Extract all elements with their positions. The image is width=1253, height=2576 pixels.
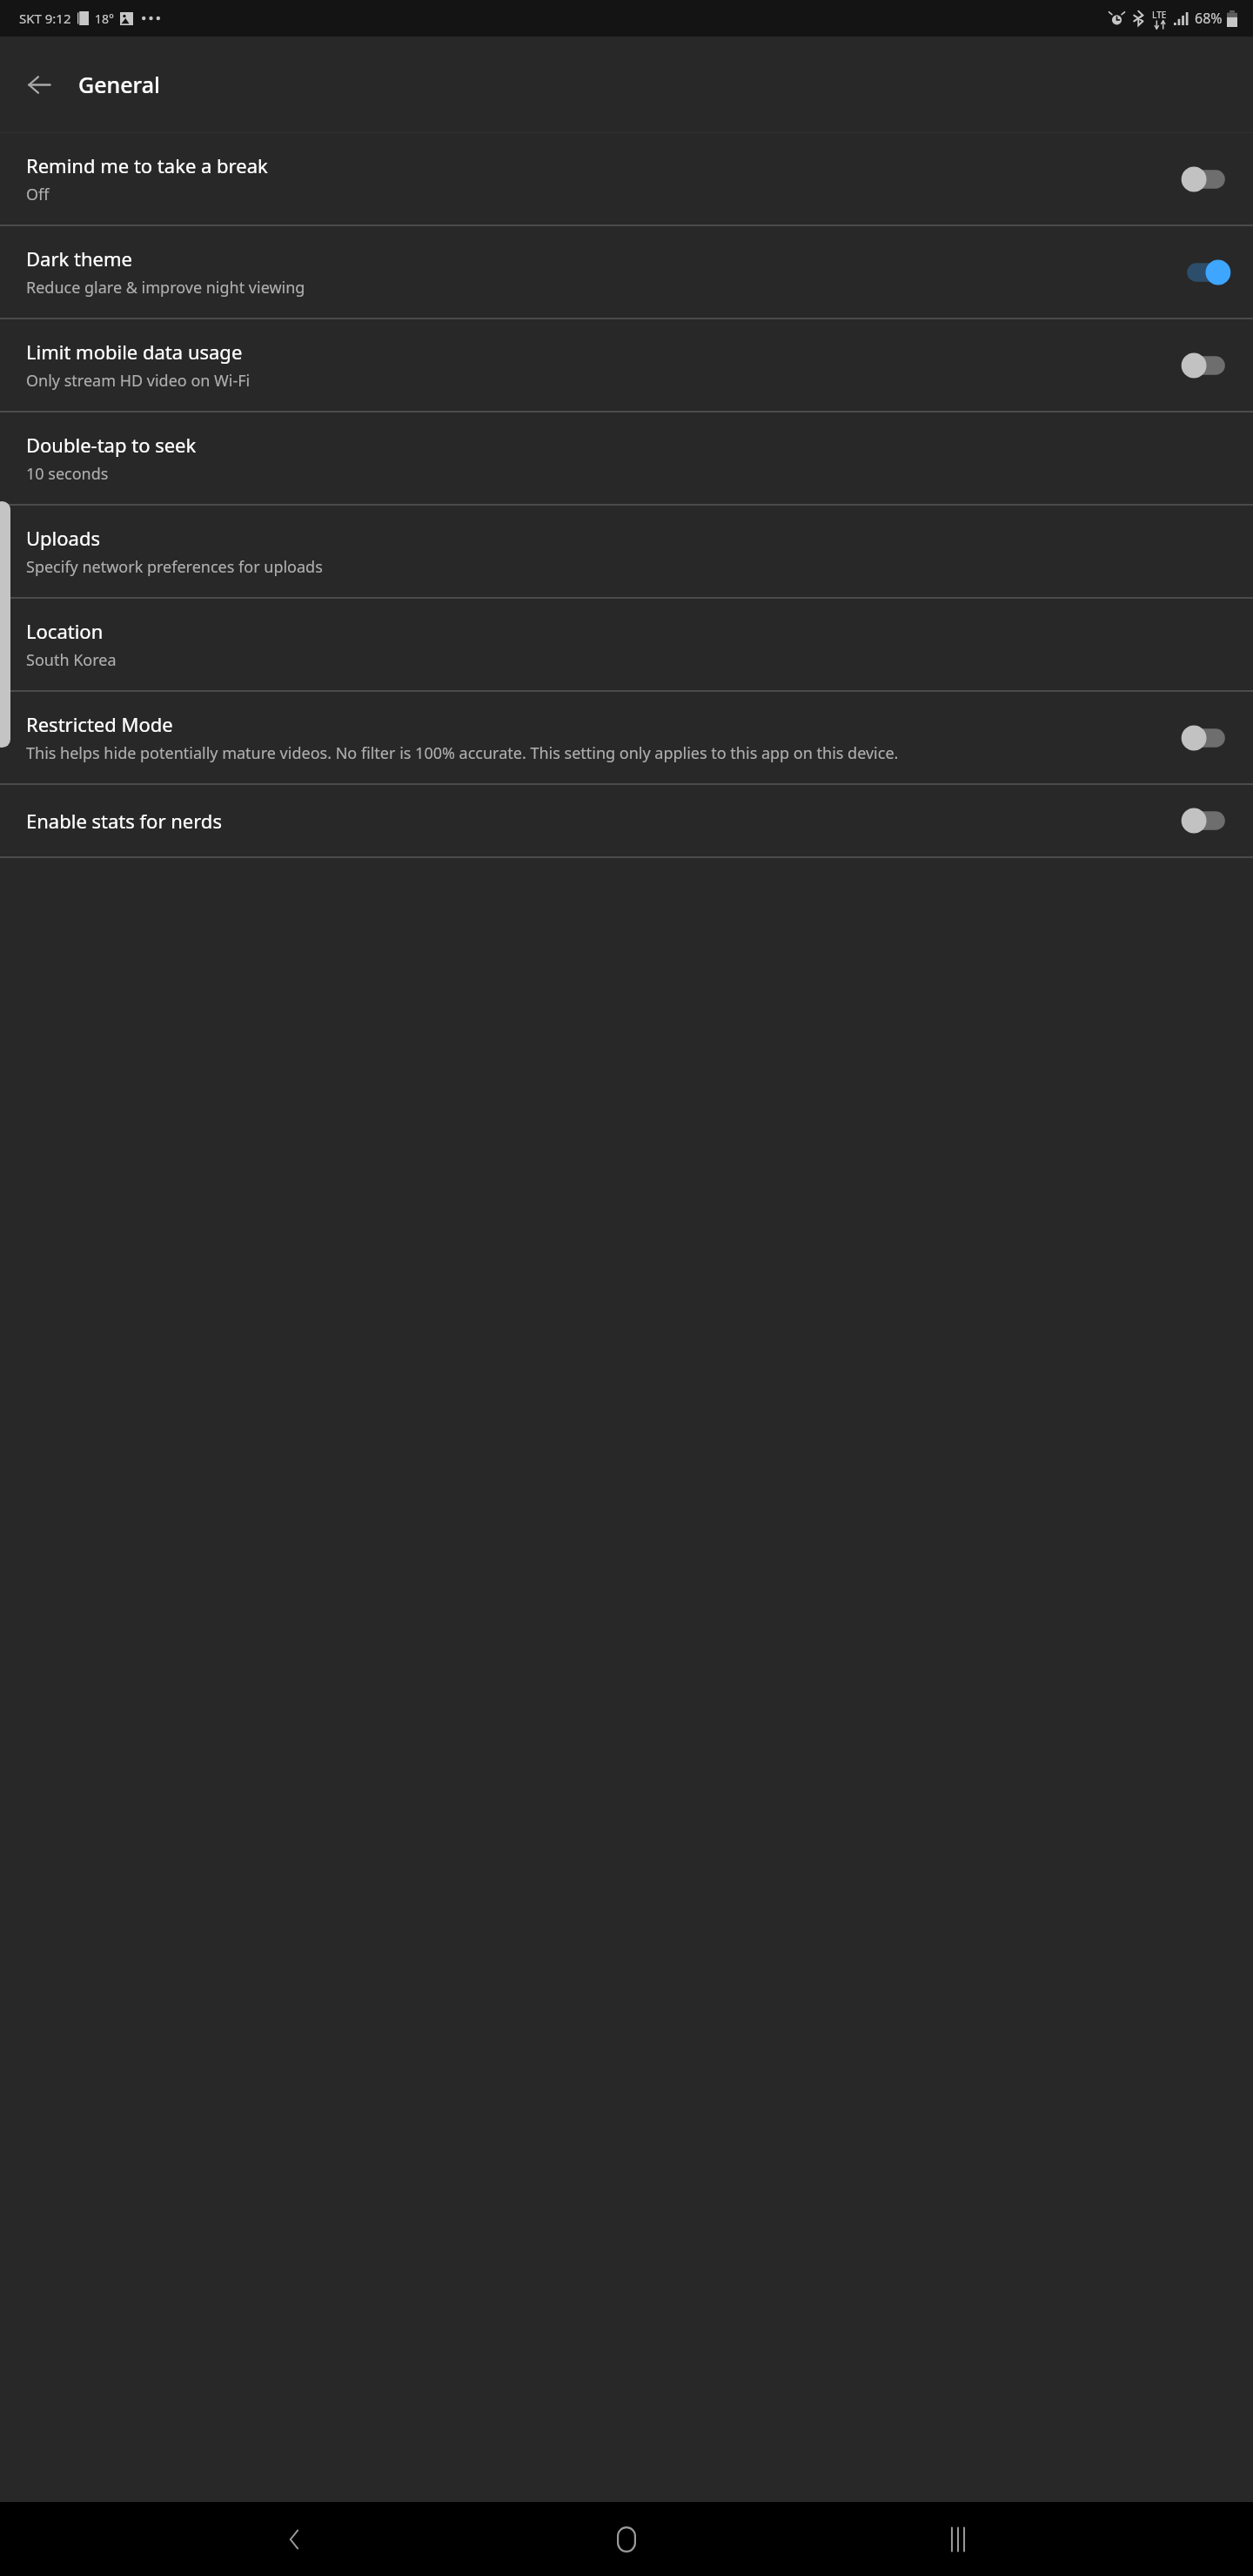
staticText: This helps hide potentially mature video… (26, 742, 899, 764)
staticText: Reduce glare & improve night viewing (26, 277, 305, 299)
button[interactable]: Limit mobile data usage (0, 319, 1253, 411)
staticText: Only stream HD video on Wi-Fi (26, 370, 251, 392)
button[interactable]: Back (258, 2503, 332, 2576)
staticText: LTE (1152, 9, 1167, 21)
button[interactable]: Remind me to take a break (0, 133, 1253, 225)
button[interactable]: Restricted Mode (0, 692, 1253, 783)
button[interactable]: Back (12, 57, 66, 111)
staticText: Restricted Mode (26, 711, 173, 737)
button[interactable]: Recent apps (921, 2503, 995, 2576)
button[interactable]: Double-tap to seek (0, 413, 1253, 504)
button[interactable]: Dark theme (0, 226, 1253, 318)
button[interactable]: Toggle off (1182, 721, 1230, 755)
staticText: SKT 9:12 (19, 10, 71, 27)
button[interactable]: Home (590, 2503, 663, 2576)
button[interactable]: Location (0, 599, 1253, 690)
staticText: Off (26, 184, 50, 205)
button[interactable]: Toggle off (1182, 349, 1230, 382)
staticText: South Korea (26, 649, 117, 671)
staticText: Dark theme (26, 245, 132, 272)
staticText: Enable stats for nerds (26, 808, 222, 834)
button[interactable]: Uploads (0, 506, 1253, 597)
staticText: 68% (1195, 9, 1223, 28)
staticText: 18° (95, 10, 115, 27)
button[interactable]: Enable stats for nerds (0, 785, 1253, 856)
button[interactable]: Toggle off (1182, 163, 1230, 196)
staticText: Double-tap to seek (26, 432, 197, 458)
staticText: Location (26, 618, 104, 644)
button[interactable]: Toggle on (1182, 256, 1230, 289)
staticText: Limit mobile data usage (26, 339, 243, 365)
staticText: Remind me to take a break (26, 152, 268, 178)
staticText: Specify network preferences for uploads (26, 556, 323, 578)
staticText: Uploads (26, 525, 101, 551)
staticText: 10 seconds (26, 463, 109, 485)
button[interactable]: Toggle off (1182, 804, 1230, 837)
staticText: General (78, 70, 160, 99)
